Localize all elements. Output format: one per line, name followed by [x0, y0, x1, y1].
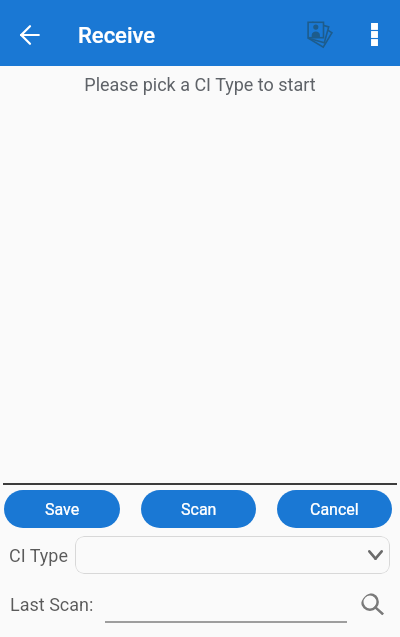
staticText: Receive [78, 23, 156, 49]
button[interactable]: More options [353, 12, 395, 54]
staticText: Scan [181, 500, 217, 519]
staticText: Save [45, 500, 80, 519]
button[interactable]: Photos [300, 10, 346, 56]
button[interactable] [75, 536, 390, 574]
button[interactable]: Back [8, 11, 52, 55]
staticText: Cancel [310, 500, 359, 519]
button[interactable]: Cancel [277, 490, 392, 528]
staticText: Last Scan: [10, 594, 94, 615]
button[interactable]: Save [4, 490, 120, 528]
button[interactable]: Scan [141, 490, 256, 528]
staticText: Please pick a CI Type to start [0, 74, 400, 95]
button[interactable]: Search [361, 593, 387, 618]
staticText: CI Type [9, 545, 69, 566]
